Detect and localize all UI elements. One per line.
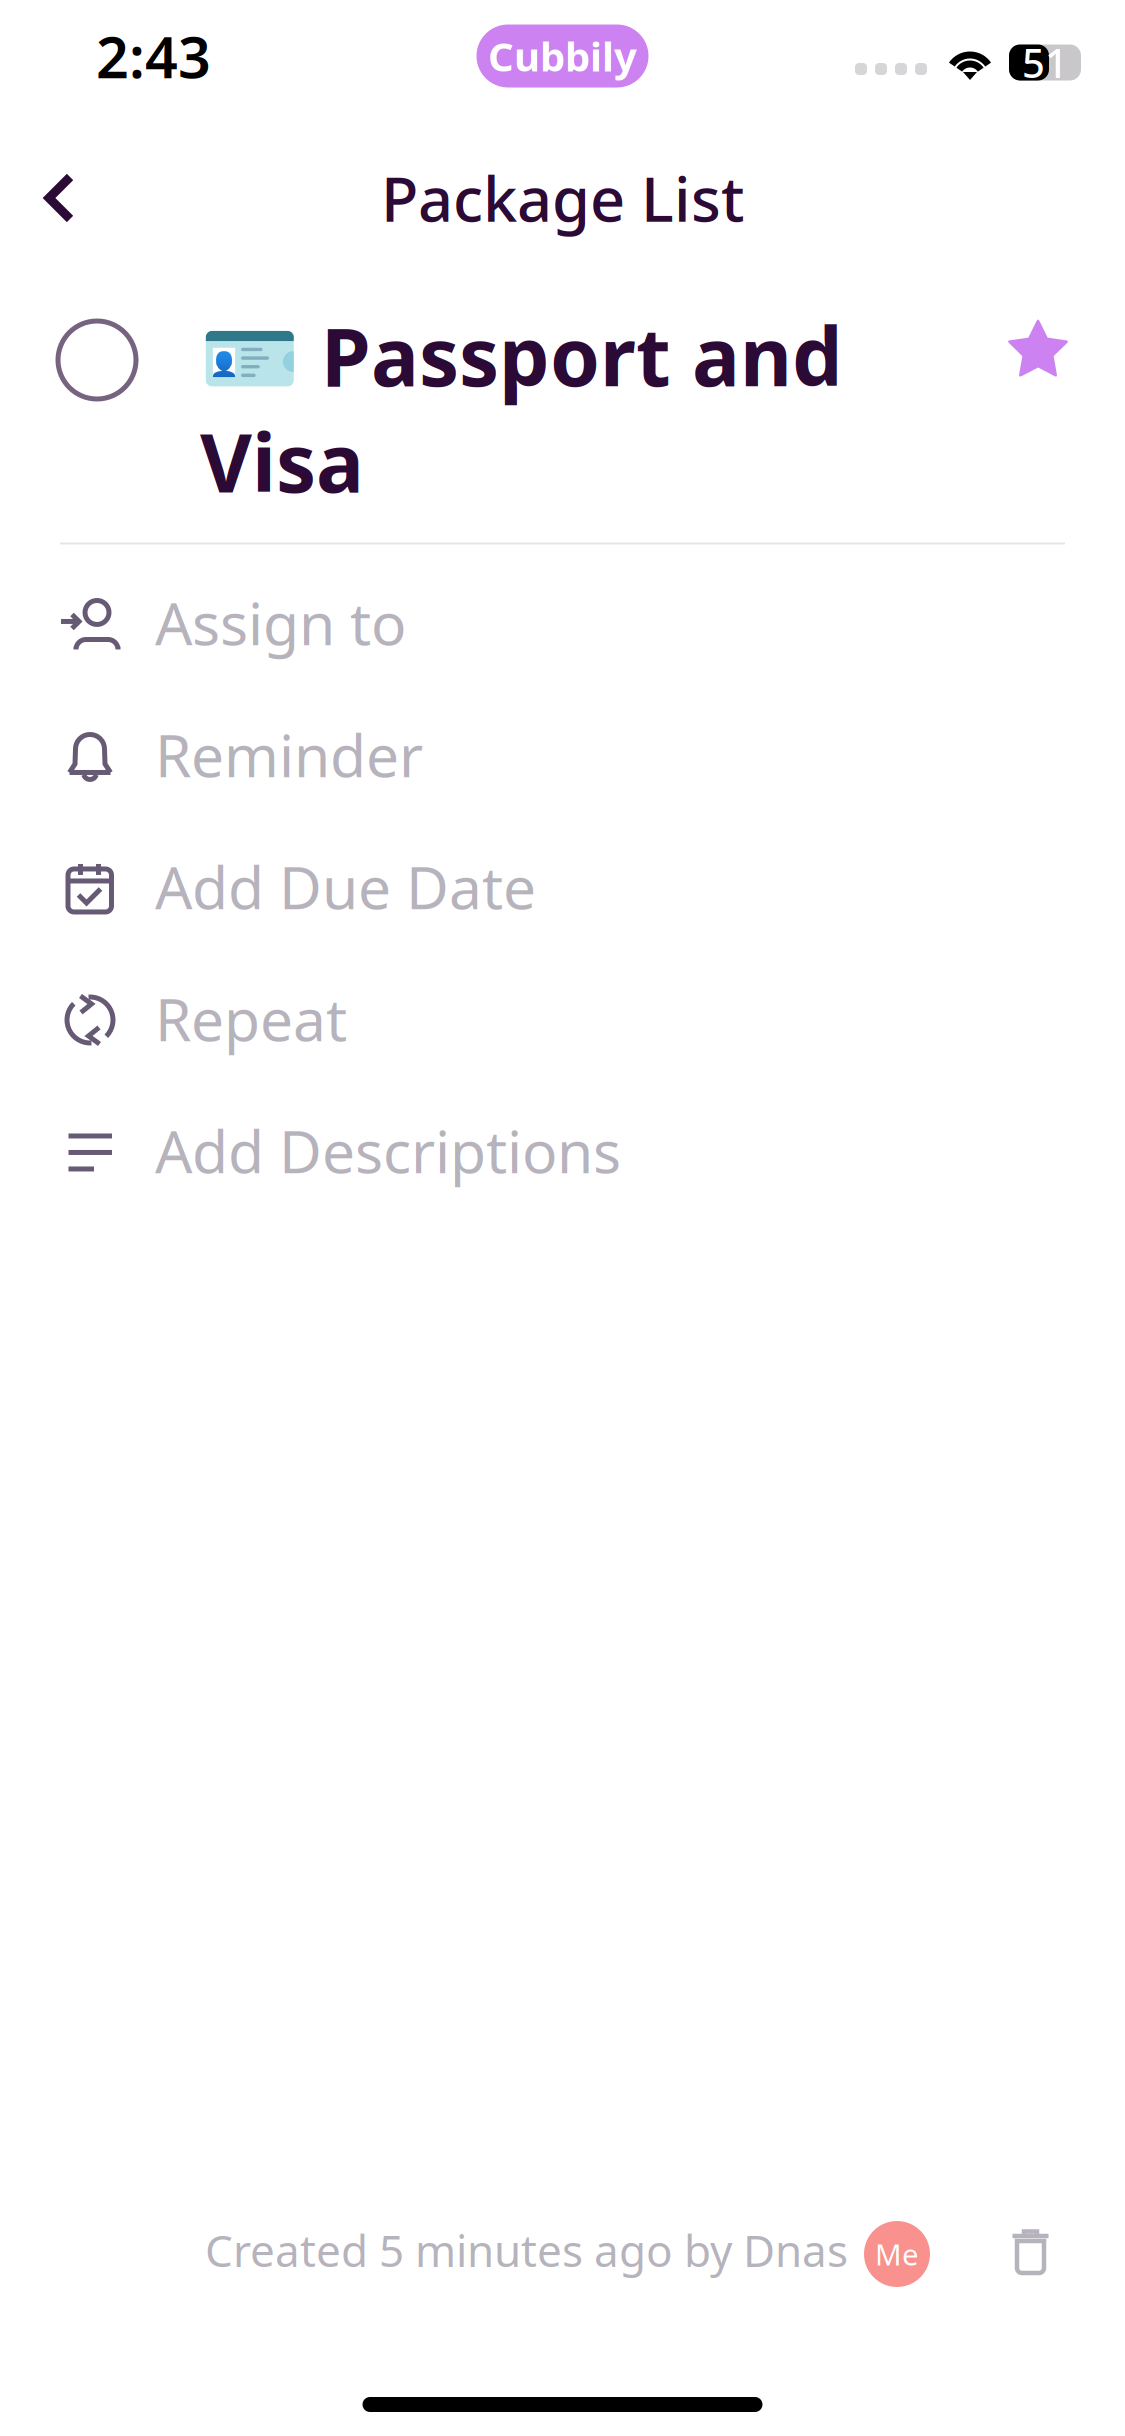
button[interactable]: Back <box>0 151 105 245</box>
staticText: Add Due Date <box>155 847 536 925</box>
button[interactable]: Add Descriptions <box>0 1072 1125 1204</box>
button[interactable]: Delete task <box>930 2223 1125 2277</box>
button[interactable]: Repeat <box>0 940 1125 1072</box>
staticText: Reminder <box>155 715 423 793</box>
staticText: Add Descriptions <box>155 1111 621 1189</box>
staticText: Package List <box>381 157 744 239</box>
button[interactable]: Favorite <box>1006 318 1125 384</box>
staticText: Repeat <box>155 979 347 1057</box>
button[interactable]: Add Due Date <box>0 808 1125 940</box>
button[interactable]: Reminder <box>0 676 1125 808</box>
staticText: Created 5 minutes ago by Dnas <box>205 2221 848 2279</box>
staticText: Assign to <box>155 583 406 661</box>
staticText: 51 <box>1022 36 1068 89</box>
staticText: 2:43 <box>96 18 211 94</box>
staticText: Cubbily <box>488 29 637 82</box>
button[interactable]: Assign to <box>0 544 1125 676</box>
button[interactable]: Mark complete <box>0 318 136 399</box>
staticText: 🪪 Passport and Visa <box>200 302 843 514</box>
staticText: Me <box>875 2234 919 2273</box>
